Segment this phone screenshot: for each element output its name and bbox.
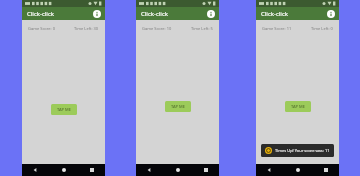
button[interactable]: Recents [87, 165, 97, 175]
button[interactable]: TAP ME [165, 101, 191, 112]
button[interactable]: Info [205, 8, 216, 19]
button[interactable]: Back [264, 165, 274, 175]
button[interactable]: Info [325, 8, 336, 19]
staticText: Click-click [141, 10, 168, 18]
button[interactable]: TAP ME [285, 101, 311, 112]
button[interactable]: Recents [201, 165, 211, 175]
staticText: Time Left: 5 [191, 26, 213, 31]
button[interactable]: Home [59, 165, 69, 175]
staticText: Times Up! Your score was: 11 [275, 148, 330, 153]
staticText: TAP ME [171, 104, 185, 109]
staticText: Time Left: 30 [74, 26, 99, 31]
staticText: Click-click [27, 10, 54, 18]
staticText: Game Score: 11 [262, 26, 292, 31]
button[interactable]: Recents [321, 165, 331, 175]
button[interactable]: Back [144, 165, 154, 175]
staticText: Click-click [261, 10, 288, 18]
staticText: Game Score: 0 [28, 26, 55, 31]
staticText: TAP ME [57, 107, 71, 112]
button[interactable]: TAP ME [51, 104, 77, 115]
button[interactable]: Home [293, 165, 303, 175]
button[interactable]: Info [91, 8, 102, 19]
staticText: Time Left: 0 [311, 26, 333, 31]
button[interactable]: Back [30, 165, 40, 175]
staticText: TAP ME [291, 104, 305, 109]
button[interactable]: Times Up! Your score was: 11 [261, 144, 334, 157]
button[interactable]: Home [173, 165, 183, 175]
staticText: Game Score: 10 [142, 26, 172, 31]
